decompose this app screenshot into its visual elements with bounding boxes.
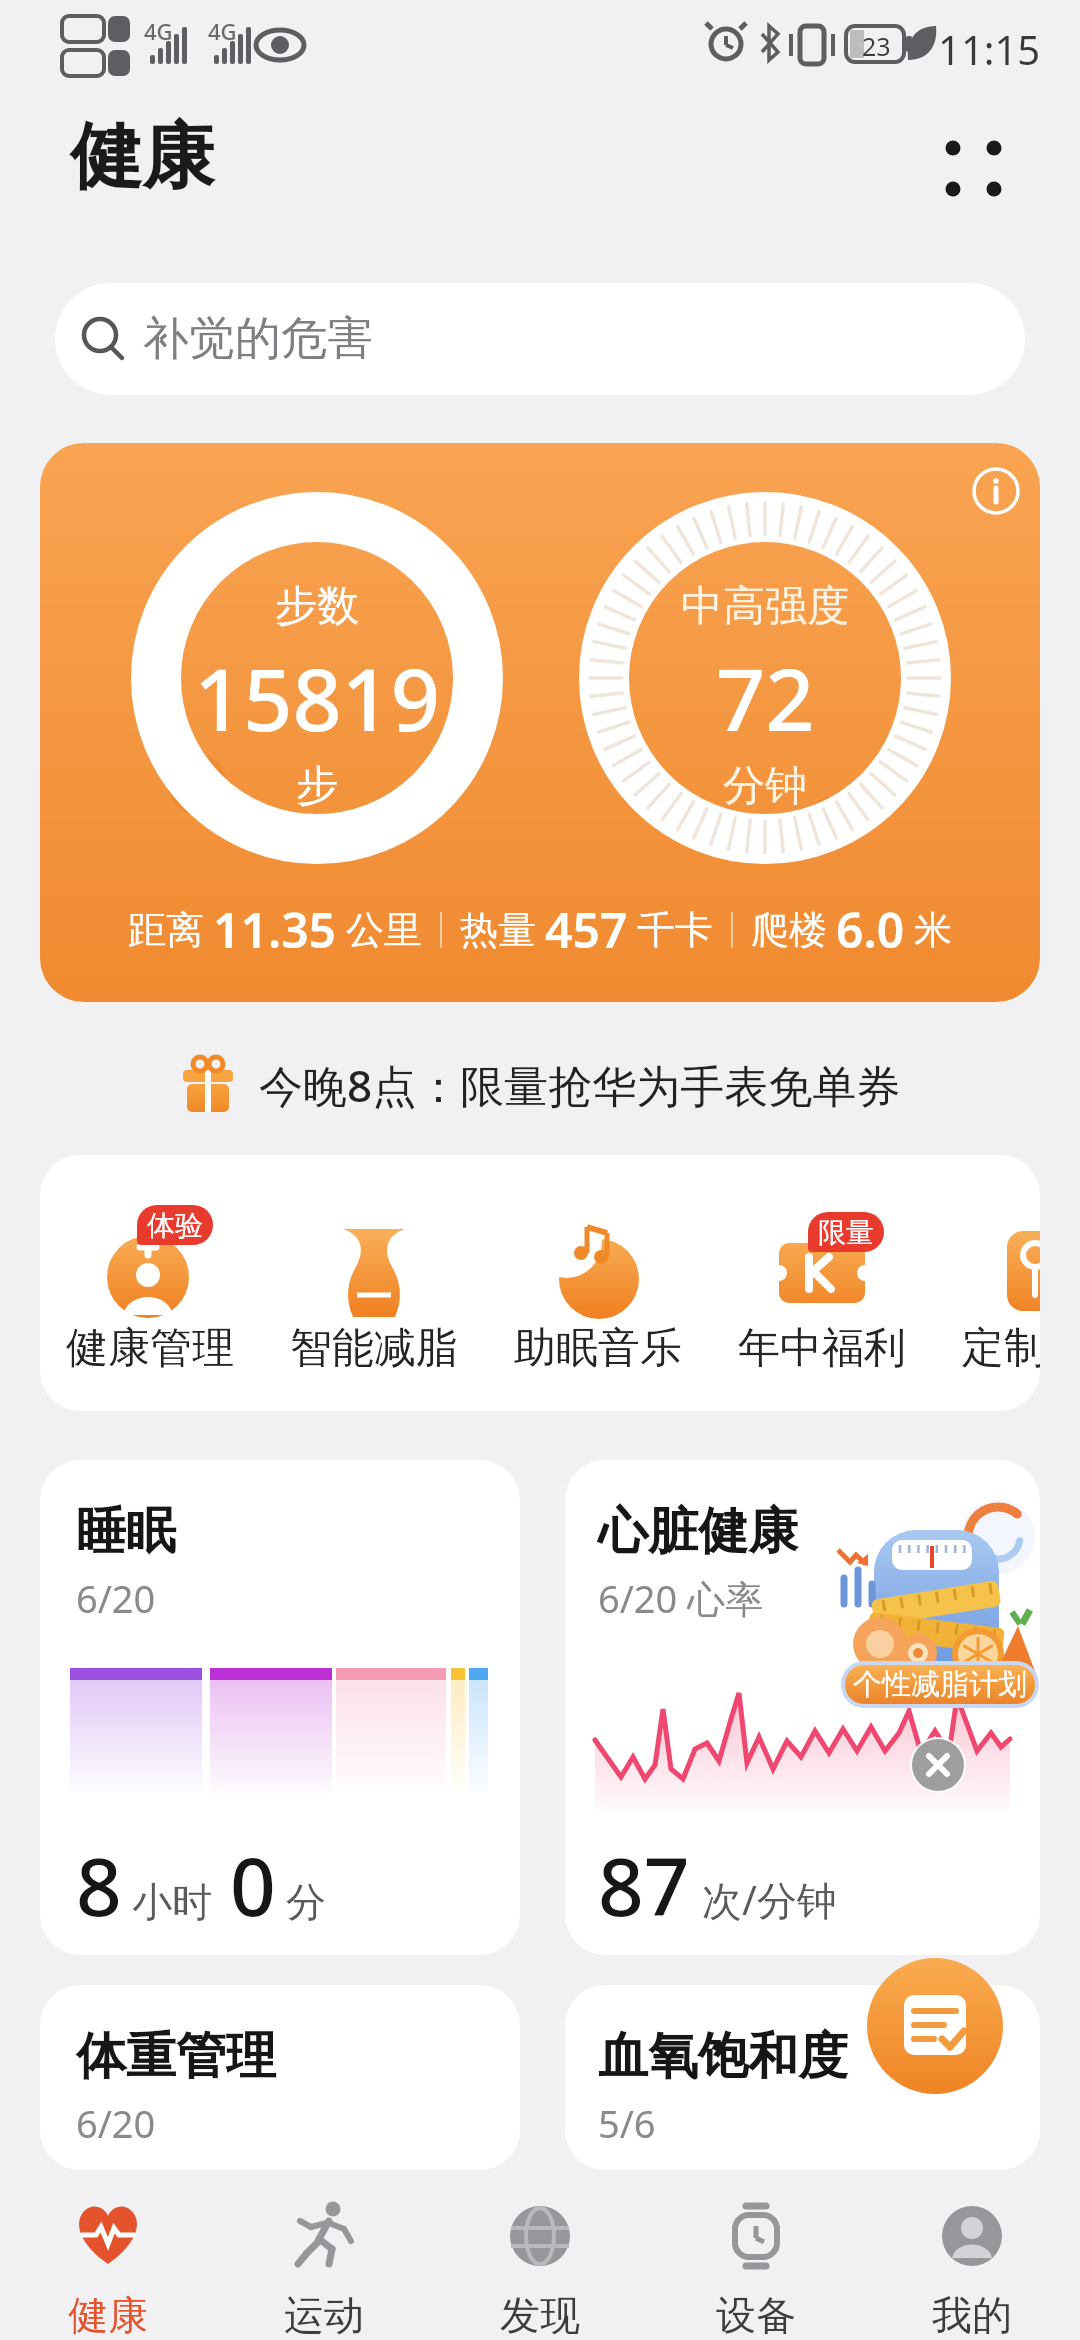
staticText: 体重管理 — [76, 2025, 276, 2088]
staticText: 15819 — [194, 639, 440, 756]
staticText: 公里 — [346, 906, 422, 954]
staticText: 6.0 — [836, 897, 905, 962]
staticText: 距离 — [128, 906, 204, 954]
staticText: 血氧饱和度 — [598, 2025, 848, 2088]
staticText: 步 — [296, 760, 338, 813]
staticText: 分钟 — [723, 760, 807, 813]
button[interactable]: 血氧饱和度 — [565, 1985, 1040, 2170]
staticText: 4G — [208, 16, 237, 46]
staticText: 体验 — [147, 1208, 203, 1243]
button[interactable]: 心脏健康 — [565, 1460, 1040, 1955]
button[interactable]: 睡眠 — [40, 1460, 520, 1955]
staticText: 11:15 — [938, 22, 1041, 76]
staticText: 次/分钟 — [702, 1872, 837, 1927]
staticText: 限量 — [818, 1215, 874, 1250]
staticText: 我的 — [932, 2290, 1012, 2340]
staticText: 5/6 — [598, 2097, 656, 2149]
button[interactable]: 步数 — [40, 443, 1040, 1002]
staticText: 个性减脂计划 — [853, 1666, 1027, 1703]
staticText: 6/20 — [76, 2097, 156, 2149]
staticText: 72 — [716, 639, 815, 756]
button[interactable]: 运动 — [216, 2186, 432, 2340]
staticText: 中高强度 — [681, 580, 849, 633]
button[interactable]: 健康 — [0, 2186, 216, 2340]
staticText: 热量 — [460, 906, 536, 954]
staticText: 定制计划 — [962, 1322, 1040, 1375]
staticText: 千卡 — [637, 906, 713, 954]
staticText: 年中福利 — [738, 1322, 906, 1375]
staticText: 米 — [914, 906, 952, 954]
staticText: 心脏健康 — [598, 1500, 798, 1563]
staticText: 运动 — [284, 2290, 364, 2340]
staticText: 补觉的危害 — [143, 310, 373, 368]
staticText: 6/20 — [76, 1572, 156, 1624]
staticText: 步数 — [275, 580, 359, 633]
button[interactable]: 定制计划 — [956, 1155, 1040, 1411]
staticText: 健康管理 — [66, 1322, 234, 1375]
staticText: 8 — [76, 1830, 122, 1939]
staticText: 小时 — [132, 1877, 212, 1927]
button[interactable] — [909, 1736, 967, 1794]
staticText: 睡眠 — [76, 1500, 176, 1563]
staticText: 健康 — [68, 2290, 148, 2340]
button[interactable]: 年中福利 — [732, 1155, 912, 1411]
button[interactable]: 体重管理 — [40, 1985, 520, 2170]
staticText: 6/20 心率 — [598, 1572, 764, 1624]
staticText: 设备 — [716, 2290, 796, 2340]
staticText: 爬楼 — [751, 906, 827, 954]
button[interactable] — [867, 1958, 1003, 2094]
staticText: 今晚8点：限量抢华为手表免单券 — [259, 1055, 901, 1115]
staticText: 457 — [545, 897, 628, 962]
staticText: 智能减脂 — [290, 1322, 458, 1375]
button[interactable]: 健康管理 — [60, 1155, 240, 1411]
staticText: 助眠音乐 — [514, 1322, 682, 1375]
staticText: 0 — [230, 1830, 276, 1939]
button[interactable]: 智能减脂 — [284, 1155, 464, 1411]
staticText: 健康 — [70, 112, 214, 203]
staticText: 87 — [598, 1830, 690, 1939]
staticText: 11.35 — [213, 897, 337, 962]
button[interactable]: 今晚8点：限量抢华为手表免单券 — [0, 1052, 1080, 1118]
staticText: 4G — [144, 16, 173, 46]
button[interactable]: 发现 — [432, 2186, 648, 2340]
button[interactable]: 补觉的危害 — [55, 283, 1025, 395]
button[interactable]: 我的 — [864, 2186, 1080, 2340]
button[interactable] — [938, 132, 1008, 202]
staticText: 发现 — [500, 2290, 580, 2340]
button[interactable]: 设备 — [648, 2186, 864, 2340]
button[interactable]: 助眠音乐 — [508, 1155, 688, 1411]
staticText: 23 — [862, 29, 891, 63]
staticText: 分 — [286, 1877, 326, 1927]
